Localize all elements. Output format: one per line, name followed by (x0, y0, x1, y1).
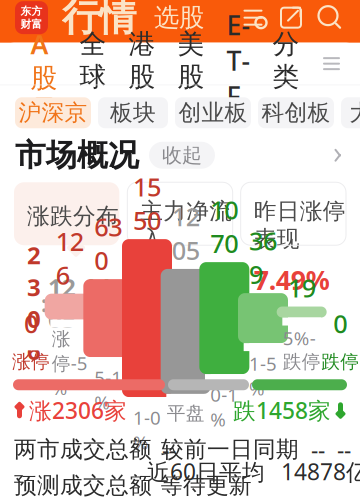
staticText: 14878亿 (281, 456, 360, 486)
staticText: 19 (288, 271, 316, 304)
staticText: 主力净流入 (140, 197, 232, 253)
staticText: 板块 (110, 99, 156, 127)
staticText: 预测成交总额 (14, 471, 152, 498)
staticText: -- (162, 434, 176, 464)
button[interactable]: 创业板 (175, 97, 251, 128)
staticText: 2306 (27, 239, 41, 367)
staticText: 1070 (210, 193, 238, 260)
staticText: 1-0% (133, 405, 161, 455)
button[interactable]: 市场概况 (0, 128, 360, 182)
staticText: 行情 (62, 0, 136, 41)
staticText: 5-1% (94, 365, 122, 415)
button[interactable]: 全部分类 (310, 43, 352, 85)
staticText: 港股 (128, 28, 155, 93)
staticText: 1-5% (249, 351, 277, 401)
button[interactable]: 涨跌分布 (14, 182, 119, 245)
button[interactable]: ETF (215, 43, 261, 85)
staticText: : (41, 287, 48, 319)
button[interactable]: 沪深京 (15, 97, 91, 128)
button[interactable]: 昨日涨停表现 (241, 182, 346, 245)
button[interactable]: 大 (341, 97, 360, 128)
staticText: 选股 (154, 2, 204, 33)
staticText: ETF (226, 7, 250, 113)
button[interactable]: 美股 (166, 43, 215, 85)
staticText: 科创板 (261, 99, 330, 127)
staticText: 等待更新 (160, 471, 252, 498)
staticText: -- -- (311, 434, 351, 464)
staticText: 收起 (162, 143, 202, 168)
button[interactable]: 科创板 (258, 97, 334, 128)
button[interactable]: 筛选设置 (234, 0, 272, 38)
staticText: 财富 (20, 18, 42, 31)
button[interactable]: 全球 (68, 43, 117, 85)
button[interactable]: 主力净流入 (127, 182, 233, 245)
button[interactable]: A股 (19, 43, 68, 85)
staticText: 近60日平均 (147, 456, 265, 486)
staticText: 涨停-5% (52, 328, 88, 400)
staticText: 1458 (83, 271, 111, 335)
button[interactable]: 分类 (261, 43, 310, 85)
staticText: 平盘 (167, 402, 205, 425)
button[interactable]: 东方财富 (15, 1, 48, 34)
staticText: 涨2306家 (29, 395, 127, 425)
staticText: 两市成交总额 (14, 435, 152, 463)
staticText: 0 (333, 307, 347, 340)
staticText: 市场概况 (15, 136, 139, 174)
staticText: 跌1458家 (233, 395, 331, 425)
staticText: 1205 (172, 200, 200, 267)
button[interactable]: 选股 (136, 2, 210, 33)
staticText: 美股 (177, 28, 204, 93)
staticText: 涨停 (12, 350, 50, 373)
staticText: 0-1% (210, 382, 238, 432)
staticText: 630 (94, 210, 122, 277)
staticText: 126 (56, 224, 84, 292)
staticText: 跌停 (321, 350, 359, 373)
staticText: 1205 (48, 271, 76, 335)
button[interactable]: 分享 (272, 0, 310, 38)
button[interactable]: 板块 (98, 97, 168, 128)
button[interactable]: 港股 (117, 43, 166, 85)
staticText: 369 (249, 224, 277, 291)
staticText: 1550 (133, 170, 161, 237)
button[interactable]: 搜索 (310, 0, 350, 38)
button[interactable]: 行情 (48, 0, 136, 41)
staticText: 大 (349, 99, 360, 127)
staticText: 沪深京 (18, 99, 87, 127)
staticText: A股 (30, 26, 57, 94)
staticText: 昨日涨停表现 (254, 197, 346, 253)
staticText: 0 (24, 307, 38, 340)
staticText: 东方 (20, 4, 42, 18)
staticText: : (76, 287, 83, 319)
staticText: 较前一日同期 (161, 435, 299, 463)
staticText: 5%-跌停 (283, 325, 321, 373)
staticText: 分类 (272, 28, 299, 93)
staticText: 7.49% (254, 262, 330, 297)
staticText: 全球 (79, 28, 106, 93)
staticText: 涨跌分布 (27, 202, 119, 230)
staticText: 创业板 (178, 99, 247, 127)
